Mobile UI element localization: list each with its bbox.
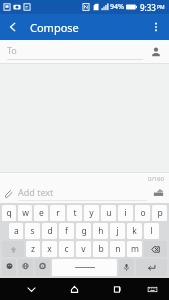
button[interactable]: g	[76, 223, 91, 239]
button[interactable]: s	[25, 223, 40, 239]
button[interactable]: Send	[147, 184, 169, 203]
button[interactable]: y	[84, 205, 99, 221]
staticText: m	[131, 243, 139, 255]
staticText: e	[39, 207, 44, 219]
button[interactable]: j	[110, 223, 125, 239]
staticText: 0/160	[148, 175, 164, 183]
staticText: 94%	[110, 2, 124, 12]
button[interactable]: Attach	[0, 185, 18, 203]
staticText: b	[98, 243, 104, 255]
button[interactable]: Hide keyboard	[17, 278, 45, 300]
staticText: n	[115, 243, 121, 255]
button[interactable]: More options	[143, 14, 169, 40]
button[interactable]: Backspace	[144, 241, 167, 257]
button[interactable]: Symbols	[2, 259, 16, 276]
button[interactable]: Recents	[104, 278, 131, 300]
button[interactable]: q	[2, 205, 16, 221]
button[interactable]: e	[34, 205, 48, 221]
button[interactable]: i	[118, 205, 133, 221]
staticText: h	[98, 225, 104, 237]
staticText: v	[81, 243, 86, 255]
button[interactable]: To	[0, 40, 169, 63]
staticText: Compose	[30, 20, 79, 35]
button[interactable]: h	[93, 223, 108, 239]
staticText: s	[30, 225, 35, 237]
button[interactable]: Space	[52, 259, 117, 276]
staticText: i	[124, 207, 127, 219]
staticText: t	[73, 207, 77, 219]
staticText: k	[132, 225, 137, 237]
button[interactable]: b	[93, 241, 108, 257]
button[interactable]: Switch keyboard	[139, 278, 166, 300]
staticText: g	[81, 225, 87, 237]
button[interactable]: Voice input	[119, 259, 134, 276]
staticText: r	[56, 207, 60, 219]
staticText: u	[106, 207, 112, 219]
staticText: x	[47, 243, 52, 255]
staticText: 9:33	[140, 2, 156, 13]
button[interactable]: Settings	[35, 259, 50, 276]
button[interactable]: Choose contact	[148, 44, 164, 60]
staticText: PM	[157, 4, 165, 11]
button[interactable]: Enter	[136, 259, 167, 276]
button[interactable]: k	[127, 223, 142, 239]
button[interactable]: Shift	[2, 241, 24, 257]
staticText: z	[31, 243, 35, 255]
button[interactable]: Home	[61, 278, 88, 300]
button[interactable]: z	[26, 241, 40, 257]
button[interactable]: v	[76, 241, 91, 257]
staticText: d	[47, 225, 53, 237]
button[interactable]: f	[59, 223, 74, 239]
staticText: a	[14, 225, 19, 237]
staticText: f	[65, 225, 68, 237]
button[interactable]: Back	[0, 14, 26, 40]
staticText: Add text	[18, 186, 54, 198]
button[interactable]: u	[101, 205, 116, 221]
button[interactable]: d	[42, 223, 57, 239]
staticText: j	[116, 225, 119, 237]
staticText: y	[89, 207, 94, 219]
button[interactable]: n	[110, 241, 125, 257]
button[interactable]: w	[18, 205, 32, 221]
button[interactable]: r	[50, 205, 65, 221]
staticText: To	[7, 44, 17, 56]
button[interactable]: c	[59, 241, 74, 257]
staticText: o	[140, 207, 146, 219]
button[interactable]: o	[135, 205, 150, 221]
button[interactable]: p	[152, 205, 167, 221]
staticText: w	[22, 207, 29, 219]
button[interactable]: x	[42, 241, 57, 257]
button[interactable]: m	[127, 241, 142, 257]
button[interactable]: Language	[18, 259, 33, 276]
staticText: l	[150, 225, 153, 237]
staticText: c	[64, 243, 69, 255]
button[interactable]: t	[67, 205, 82, 221]
button[interactable]: a	[9, 223, 23, 239]
staticText: p	[157, 207, 163, 219]
staticText: q	[6, 207, 12, 219]
button[interactable]: l	[144, 223, 159, 239]
